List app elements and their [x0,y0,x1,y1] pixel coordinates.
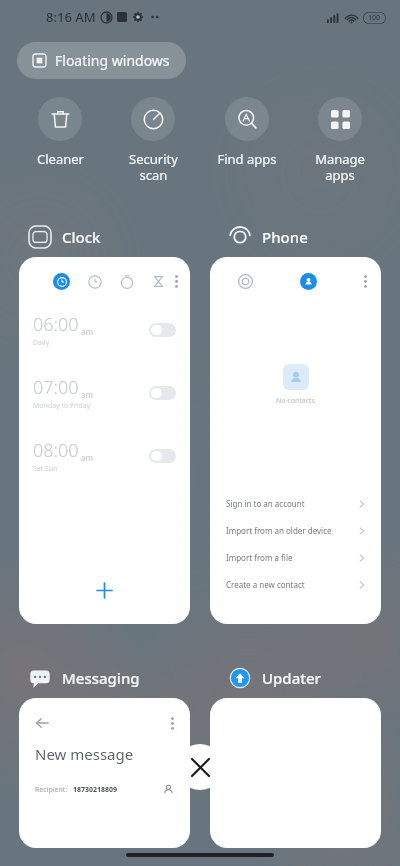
button[interactable]: Toggle alarm 08:00 [149,449,176,463]
staticText: Sign in to an account [226,498,305,509]
staticText: Cleaner [37,150,84,168]
button[interactable]: Close all [177,744,223,790]
staticText: Recipient: [35,785,68,795]
button[interactable]: 06:00 [19,257,190,624]
button[interactable]: Toggle alarm 06:00 [149,323,176,337]
button[interactable]: Import from an older device [210,517,381,544]
staticText: Security scan [129,150,178,183]
staticText: Monday to Friday [33,401,91,411]
button[interactable] [210,698,381,848]
staticText: 8:16 AM [46,8,96,26]
staticText: Import from an older device [226,525,332,536]
other: Back [35,716,49,730]
staticText: 100 [368,13,381,23]
staticText: 08:00 [33,438,79,463]
staticText: am [81,326,93,337]
staticText: Sat Sun [33,464,58,474]
button[interactable]: Floating windows [17,42,186,79]
staticText: New message [35,744,134,764]
staticText: 06:00 [33,312,79,337]
staticText: Create a new contact [226,579,305,590]
staticText: Clock [62,227,101,247]
button[interactable]: Toggle alarm 07:00 [149,386,176,400]
button[interactable]: Back [19,698,190,848]
staticText: Find apps [217,150,277,168]
button[interactable]: No contacts [210,257,381,624]
button[interactable]: Find apps [204,93,290,172]
staticText: 07:00 [33,375,79,400]
button[interactable]: Create a new contact [210,571,381,598]
staticText: Messaging [62,668,140,688]
button[interactable]: Manage apps [297,93,383,187]
staticText: am [81,452,93,463]
staticText: Floating windows [55,51,170,70]
button[interactable]: Security scan [110,93,196,187]
staticText: No contacts [276,396,315,406]
button[interactable]: Import from a file [210,544,381,571]
button[interactable]: Sign in to an account [210,490,381,517]
staticText: Updater [262,668,321,688]
staticText: am [81,389,93,400]
staticText: 18730218809 [73,785,118,795]
staticText: Daily [33,338,50,348]
staticText: Import from a file [226,552,293,563]
staticText: Manage apps [315,150,365,183]
staticText: Phone [262,227,308,247]
button[interactable]: Cleaner [17,93,103,172]
